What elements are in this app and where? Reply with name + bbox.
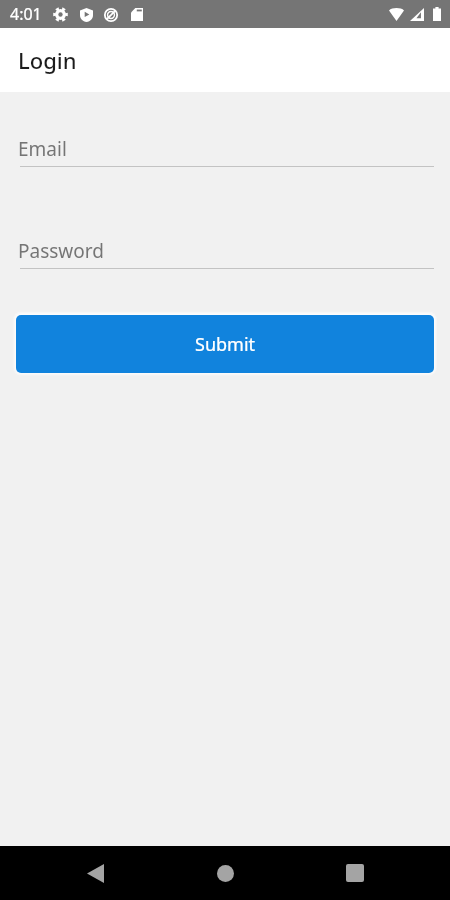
button[interactable]: Home — [201, 849, 249, 897]
button[interactable]: Back — [71, 849, 119, 897]
staticText: Password — [18, 238, 104, 264]
button[interactable]: Password — [0, 238, 450, 269]
button[interactable]: Submit — [16, 315, 434, 373]
staticText: Login — [18, 45, 77, 75]
staticText: Submit — [195, 332, 256, 357]
button[interactable]: Email — [0, 136, 450, 167]
button[interactable]: Recents — [331, 849, 379, 897]
staticText: 4:01 — [10, 3, 42, 25]
staticText: Email — [18, 136, 67, 162]
